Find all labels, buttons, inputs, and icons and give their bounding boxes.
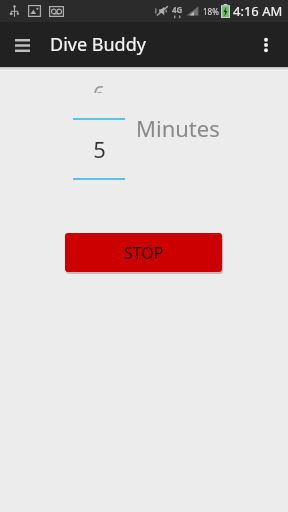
button[interactable]: Navigation menu	[0, 23, 44, 67]
staticText: STOP	[124, 242, 164, 264]
staticText: 5	[93, 134, 106, 164]
staticText: Dive Buddy	[50, 32, 146, 57]
staticText: Minutes	[136, 113, 220, 143]
staticText: 4G	[172, 4, 183, 15]
staticText: 6	[93, 80, 106, 93]
button[interactable]: 6	[73, 78, 125, 206]
staticText: 4:16 AM	[233, 2, 283, 20]
button[interactable]: More options	[244, 23, 288, 67]
staticText: 18%	[203, 6, 219, 17]
button[interactable]: STOP	[65, 233, 222, 272]
